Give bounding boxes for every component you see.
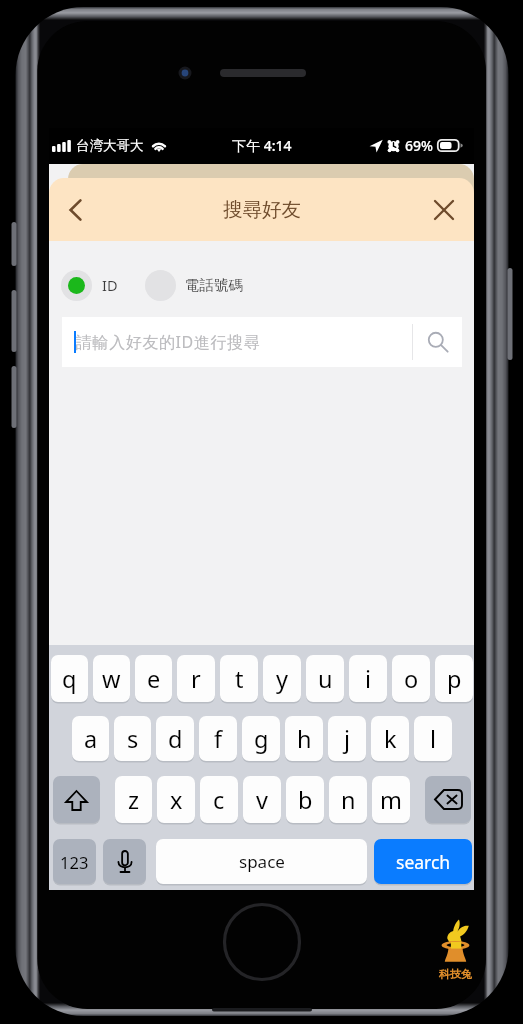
staticText: 69% [405, 136, 433, 155]
button[interactable]: h [285, 716, 323, 761]
button[interactable] [53, 776, 100, 823]
staticText: 電話號碼 [185, 276, 243, 294]
button[interactable]: i [349, 655, 387, 702]
staticText: t [235, 663, 244, 695]
staticText: e [147, 663, 161, 695]
staticText: b [298, 784, 313, 816]
staticText: f [214, 723, 223, 755]
staticText: o [404, 663, 419, 695]
button[interactable]: k [371, 716, 409, 761]
button[interactable]: b [286, 776, 324, 823]
staticText: 下午 4:14 [232, 136, 292, 155]
other: Shift [53, 776, 100, 823]
button[interactable]: space [156, 839, 367, 884]
staticText: 請輸入好友的ID進行搜尋 [76, 331, 261, 353]
staticText: y [276, 663, 288, 695]
staticText: a [84, 723, 98, 755]
button[interactable] [425, 776, 471, 823]
button[interactable]: m [372, 776, 410, 823]
button[interactable]: 123 [53, 839, 96, 884]
button[interactable]: j [328, 716, 366, 761]
button[interactable]: Search [413, 317, 462, 367]
staticText: q [62, 663, 77, 695]
staticText: p [447, 663, 462, 695]
button[interactable]: x [157, 776, 195, 823]
button[interactable] [103, 839, 146, 884]
staticText: n [341, 784, 356, 816]
button[interactable]: c [200, 776, 238, 823]
staticText: 123 [60, 851, 89, 873]
button[interactable]: 電話號碼 [141, 269, 247, 301]
button[interactable]: s [114, 716, 151, 761]
staticText: space [239, 850, 285, 873]
button[interactable]: u [306, 655, 344, 702]
staticText: x [170, 784, 183, 816]
button[interactable]: t [220, 655, 258, 702]
button[interactable]: o [392, 655, 430, 702]
staticText: w [102, 663, 121, 695]
staticText: m [380, 784, 402, 816]
button[interactable]: v [243, 776, 281, 823]
other: Backspace [425, 776, 471, 823]
staticText: j [344, 723, 351, 755]
staticText: v [256, 784, 268, 816]
staticText: ID [102, 275, 118, 295]
button[interactable]: y [263, 655, 301, 702]
button[interactable]: d [156, 716, 194, 761]
button[interactable]: ID [57, 269, 122, 301]
staticText: l [430, 723, 437, 755]
button[interactable]: a [72, 716, 109, 761]
button[interactable]: f [199, 716, 237, 761]
staticText: s [127, 723, 139, 755]
staticText: 台湾大哥大 [76, 137, 144, 154]
button[interactable]: l [414, 716, 452, 761]
button[interactable]: search [374, 839, 472, 884]
staticText: i [365, 663, 372, 695]
button[interactable]: p [435, 655, 473, 702]
staticText: z [128, 784, 140, 816]
staticText: u [318, 663, 333, 695]
button[interactable]: q [51, 655, 88, 702]
button[interactable]: r [177, 655, 215, 702]
staticText: search [396, 850, 451, 874]
staticText: h [297, 723, 312, 755]
button[interactable]: e [135, 655, 172, 702]
button[interactable]: Close [414, 178, 474, 241]
staticText: k [384, 723, 397, 755]
staticText: g [254, 723, 269, 755]
button[interactable]: z [115, 776, 152, 823]
staticText: 搜尋好友 [223, 197, 301, 222]
staticText: d [168, 723, 183, 755]
staticText: r [191, 663, 201, 695]
staticText: 科技兔 [439, 967, 472, 981]
staticText: c [213, 784, 225, 816]
other: Dictation [103, 839, 146, 884]
button[interactable]: Back [49, 178, 101, 241]
button[interactable]: g [242, 716, 280, 761]
button[interactable]: n [329, 776, 367, 823]
button[interactable]: w [93, 655, 130, 702]
